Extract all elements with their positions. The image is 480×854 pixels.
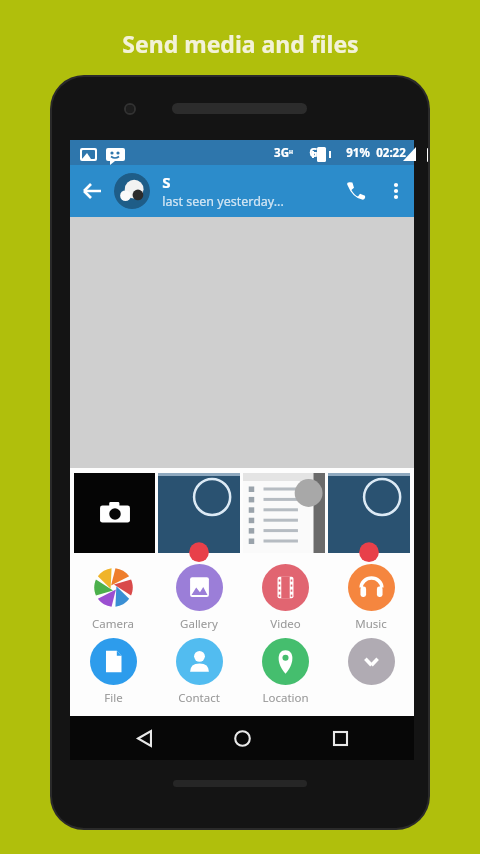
staticText: S bbox=[162, 172, 171, 192]
button[interactable]: Recent image bbox=[328, 473, 410, 553]
staticText: 91% bbox=[346, 145, 370, 161]
button[interactable]: Home bbox=[218, 716, 266, 760]
staticText: Camera bbox=[92, 616, 134, 632]
button[interactable]: More options bbox=[328, 638, 414, 690]
button[interactable]: Recent apps bbox=[316, 716, 364, 760]
button[interactable]: Gallery bbox=[156, 564, 242, 632]
button[interactable]: Contact photo bbox=[114, 173, 150, 209]
button[interactable]: Location bbox=[242, 638, 328, 706]
button[interactable]: Video bbox=[242, 564, 328, 632]
button[interactable]: Back bbox=[120, 716, 168, 760]
button[interactable]: Back bbox=[70, 169, 114, 213]
staticText: Location bbox=[262, 690, 309, 706]
staticText: G bbox=[309, 145, 318, 161]
staticText: Send media and files bbox=[122, 28, 359, 59]
staticText: Music bbox=[355, 616, 387, 632]
button[interactable]: File bbox=[70, 638, 156, 706]
staticText: Contact bbox=[178, 690, 220, 706]
button[interactable]: Recent image bbox=[158, 473, 240, 553]
button[interactable]: Contact bbox=[156, 638, 242, 706]
button[interactable]: Call bbox=[334, 169, 378, 213]
staticText: ᴴ bbox=[289, 147, 293, 158]
staticText: 02:22 bbox=[376, 145, 406, 161]
button[interactable]: Recent screenshot bbox=[243, 473, 325, 553]
button[interactable]: Take photo bbox=[74, 473, 155, 553]
staticText: Gallery bbox=[180, 616, 218, 632]
staticText: Video bbox=[270, 616, 301, 632]
staticText: last seen yesterday... bbox=[162, 193, 284, 210]
staticText: 3G bbox=[274, 145, 289, 161]
button[interactable]: More options bbox=[378, 173, 414, 209]
staticText: File bbox=[104, 690, 123, 706]
button[interactable]: Camera bbox=[70, 564, 156, 632]
button[interactable]: Music bbox=[328, 564, 414, 632]
